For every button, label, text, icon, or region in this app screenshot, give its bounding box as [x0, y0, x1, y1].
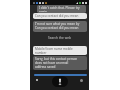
staticText: Sorry, but this contact person does not …	[35, 57, 78, 69]
button[interactable]: Assistant message	[33, 56, 87, 70]
staticText: I didn't catch that. Please try again.	[39, 6, 80, 12]
button[interactable]: Microphone	[52, 76, 68, 87]
staticText: I'm not sure what you mean by Can you co…	[35, 22, 80, 30]
button[interactable]: User message	[33, 46, 87, 55]
button[interactable]: Assistant message	[37, 5, 86, 13]
button[interactable]: More options	[80, 79, 83, 82]
button[interactable]: Assistant message	[33, 21, 87, 32]
button[interactable]: User message	[33, 13, 87, 19]
staticText: Search the web	[48, 36, 71, 40]
button[interactable]: Search the web	[42, 35, 77, 40]
staticText: Can you contact did you mean	[35, 14, 79, 18]
staticText: Mobile//com nurse mobile number	[35, 47, 73, 54]
